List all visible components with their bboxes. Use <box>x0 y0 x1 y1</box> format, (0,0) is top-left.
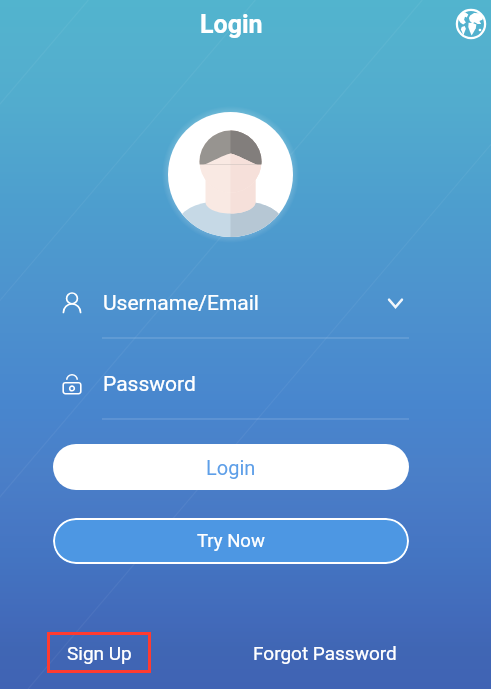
staticText: Login <box>200 10 263 39</box>
staticText: Password <box>103 372 196 397</box>
button[interactable]: Language <box>451 4 491 44</box>
staticText: Try Now <box>197 530 265 552</box>
button[interactable]: Password <box>61 367 409 401</box>
button[interactable]: Forgot Password <box>247 634 402 672</box>
staticText: Forgot Password <box>253 642 397 664</box>
button[interactable]: Login <box>53 444 409 490</box>
button[interactable]: Try Now <box>53 518 409 564</box>
staticText: Username/Email <box>103 291 259 316</box>
button[interactable]: Username/Email <box>61 286 409 320</box>
staticText: Sign Up <box>67 642 132 664</box>
button[interactable]: Sign Up <box>47 632 151 673</box>
button[interactable]: Expand <box>382 290 408 316</box>
staticText: Login <box>206 456 256 479</box>
